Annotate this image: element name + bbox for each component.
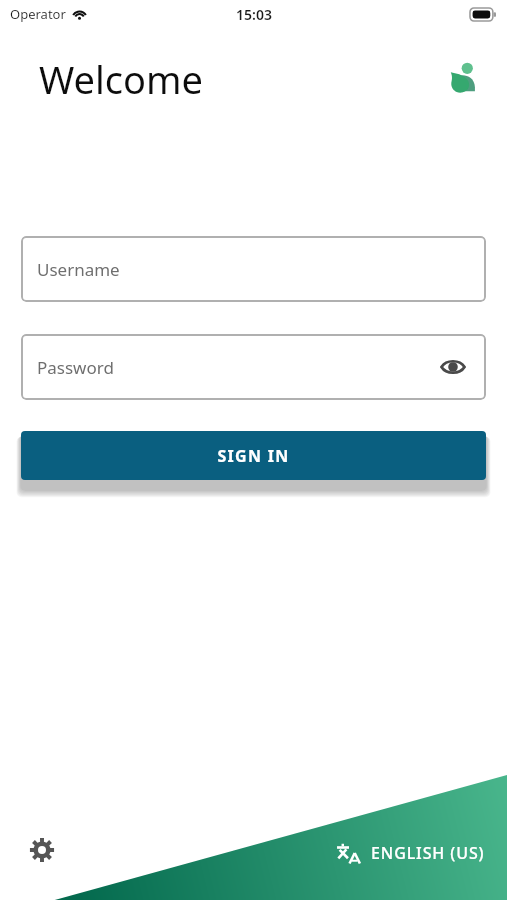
staticText: Username: [37, 258, 120, 281]
staticText: Welcome: [39, 53, 204, 105]
staticText: 15:03: [236, 5, 272, 24]
button[interactable]: App logo: [441, 58, 483, 100]
staticText: ENGLISH (US): [371, 842, 485, 864]
button[interactable]: Show password: [438, 352, 468, 382]
button[interactable]: ENGLISH (US): [332, 834, 489, 872]
button[interactable]: Username: [21, 236, 486, 302]
button[interactable]: SIGN IN: [21, 431, 486, 480]
button[interactable]: Settings: [20, 828, 64, 872]
staticText: Operator: [10, 5, 66, 23]
staticText: SIGN IN: [217, 445, 290, 467]
staticText: Password: [37, 356, 114, 379]
button[interactable]: Password: [21, 334, 486, 400]
